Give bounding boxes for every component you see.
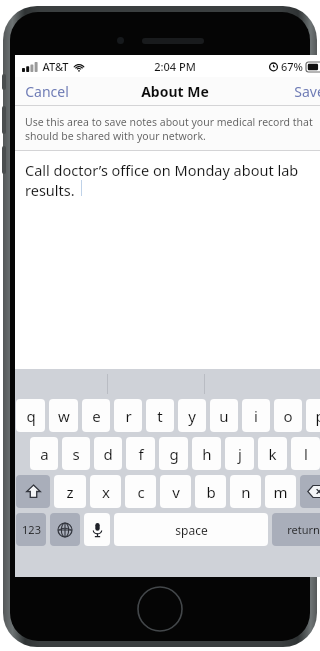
button[interactable]: Save	[284, 77, 320, 106]
button[interactable]: g	[159, 437, 188, 470]
button[interactable]: h	[192, 437, 221, 470]
staticText: 2:04 PM	[154, 59, 196, 74]
other: Dictation	[84, 513, 110, 546]
staticText: l	[304, 444, 308, 464]
button[interactable]: Call doctor’s office on Monday about lab…	[15, 151, 320, 369]
staticText: h	[202, 444, 212, 464]
staticText: e	[92, 406, 101, 426]
staticText: Use this area to save notes about your m…	[25, 115, 320, 143]
button[interactable]: c	[125, 475, 156, 508]
staticText: u	[219, 406, 229, 426]
staticText: n	[241, 482, 251, 502]
staticText: y	[188, 406, 196, 426]
staticText: space	[175, 522, 208, 538]
button[interactable]: p	[306, 399, 320, 432]
button[interactable]: e	[82, 399, 110, 432]
staticText: 123	[22, 522, 41, 537]
staticText: v	[172, 482, 180, 502]
staticText: m	[273, 482, 288, 502]
button[interactable]: y	[178, 399, 206, 432]
staticText: b	[206, 482, 216, 502]
staticText: Call doctor’s office on Monday about lab…	[25, 160, 320, 200]
button[interactable]: m	[265, 475, 296, 508]
button[interactable]: q	[16, 399, 45, 432]
staticText: AT&T	[42, 59, 69, 74]
staticText: g	[169, 444, 179, 464]
button[interactable]	[84, 513, 110, 546]
button[interactable]: r	[114, 399, 142, 432]
button[interactable]: s	[62, 437, 90, 470]
button[interactable]: Cancel	[15, 77, 79, 106]
button[interactable]: t	[146, 399, 174, 432]
button[interactable]: u	[210, 399, 238, 432]
staticText: c	[137, 482, 145, 502]
other: Shift	[16, 475, 50, 508]
button[interactable]: f	[126, 437, 155, 470]
staticText: Cancel	[25, 82, 69, 101]
button[interactable]: w	[49, 399, 78, 432]
button[interactable]: a	[30, 437, 58, 470]
staticText: About Me	[141, 82, 209, 101]
staticText: k	[268, 444, 277, 464]
button[interactable]: return	[272, 513, 320, 546]
button[interactable]: v	[160, 475, 191, 508]
button[interactable]: z	[54, 475, 86, 508]
button[interactable]	[16, 475, 50, 508]
button[interactable]: l	[291, 437, 320, 470]
staticText: w	[58, 406, 70, 426]
staticText: s	[72, 444, 80, 464]
button[interactable]: i	[242, 399, 270, 432]
staticText: i	[254, 406, 258, 426]
staticText: x	[102, 482, 110, 502]
staticText: t	[157, 406, 163, 426]
staticText: a	[40, 444, 49, 464]
button[interactable]	[50, 513, 80, 546]
staticText: o	[283, 406, 293, 426]
button[interactable]: j	[225, 437, 254, 470]
button[interactable]: space	[114, 513, 268, 546]
staticText: r	[125, 406, 132, 426]
button[interactable]: 123	[16, 513, 46, 546]
staticText: d	[103, 444, 113, 464]
staticText: q	[26, 406, 36, 426]
button[interactable]: n	[230, 475, 261, 508]
staticText: return	[287, 522, 320, 537]
staticText: p	[315, 406, 320, 426]
staticText: f	[138, 444, 144, 464]
staticText: j	[238, 444, 242, 464]
staticText: 67%	[281, 59, 303, 74]
other: Backspace	[300, 475, 320, 508]
button[interactable]: b	[195, 475, 226, 508]
button[interactable]: x	[90, 475, 121, 508]
button[interactable]: o	[274, 399, 302, 432]
button[interactable]	[300, 475, 320, 508]
staticText: z	[66, 482, 74, 502]
button[interactable]: k	[258, 437, 287, 470]
staticText: Save	[294, 82, 320, 101]
other: Change keyboard	[50, 513, 80, 546]
button[interactable]: d	[94, 437, 122, 470]
